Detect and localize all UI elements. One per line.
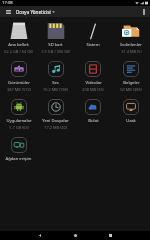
button[interactable]: İndirilenler [112,20,150,58]
button[interactable]: Home [69,231,81,240]
staticText: 387 MB (572) [7,87,31,92]
staticText: 17:08 [2,0,13,6]
button[interactable]: Ana bellek [0,20,37,58]
staticText: Görüntüler [8,80,30,86]
staticText: Ağdan erişim [5,156,32,162]
button[interactable]: Ses [37,58,74,96]
button[interactable]: Uzak [112,96,150,134]
staticText: Dosya Yöneticisi [16,9,51,15]
staticText: 208 MB (35) [82,87,104,92]
staticText: SD kart [48,42,63,48]
staticText: 31.4 MB (5) [121,49,142,54]
button[interactable]: More options [137,6,150,17]
staticText: 17.2 MB (20) [44,125,67,130]
button[interactable]: Bulut [74,96,112,134]
staticText: 62.2 GB / 64 GB [4,49,33,54]
staticText: 16.2 MB (198) [43,87,68,92]
staticText: Ana bellek [8,42,29,48]
button[interactable]: Görüntüler [0,58,37,96]
staticText: Ses [52,80,59,86]
staticText: Sistem [86,42,100,48]
button[interactable]: Back [34,231,46,240]
button[interactable]: Sistem [74,20,112,58]
button[interactable]: Recent apps [104,231,116,240]
button[interactable]: Ağdan erişim [0,134,37,172]
staticText: Bulut [88,118,99,124]
staticText: Yeni Dosyalar [42,118,69,124]
staticText: Uzak [126,118,136,124]
button[interactable]: Dosya Yöneticisi [16,7,55,17]
button[interactable]: SD kart [37,20,74,58]
button[interactable]: Belgeler [112,58,150,96]
staticText: Belgeler [123,80,140,86]
staticText: 3.9 GB / 256 GB [41,49,70,54]
staticText: 5.7 GB (63) [9,125,29,130]
button[interactable]: Uygulamalar [0,96,37,134]
button[interactable]: Yeni Dosyalar [37,96,74,134]
staticText: Uygulamalar [6,118,32,124]
staticText: 50 MB (386) [120,87,142,92]
staticText: İndirilenler [120,42,142,48]
staticText: Videolar [85,80,102,86]
button[interactable]: Videolar [74,58,112,96]
button[interactable]: Navigation menu [0,6,16,17]
